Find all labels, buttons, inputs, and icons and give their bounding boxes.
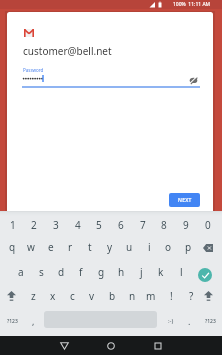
button[interactable]	[203, 244, 214, 252]
staticText: Password	[23, 67, 44, 73]
button[interactable]	[204, 291, 213, 301]
button[interactable]: l	[171, 263, 191, 281]
button[interactable]: 6	[111, 216, 131, 234]
staticText: j	[140, 265, 143, 279]
button[interactable]: b	[102, 287, 122, 305]
button[interactable]: c	[62, 287, 82, 305]
staticText: g	[98, 265, 105, 279]
staticText: p	[185, 240, 192, 254]
staticText: q	[9, 240, 16, 254]
button[interactable]: x	[43, 287, 63, 305]
button[interactable]: 8	[154, 216, 174, 234]
button[interactable]: 0	[198, 216, 218, 234]
button[interactable]: 4	[68, 216, 88, 234]
button[interactable]: 3	[46, 216, 66, 234]
button[interactable]: ?123	[2, 312, 22, 330]
button[interactable]: 9	[176, 216, 196, 234]
button[interactable]	[189, 76, 198, 85]
button[interactable]	[154, 342, 162, 350]
button[interactable]	[107, 342, 115, 350]
button[interactable]: k	[151, 263, 171, 281]
button[interactable]: q	[2, 238, 22, 256]
button[interactable]: ,	[23, 312, 43, 330]
button[interactable]: w	[21, 238, 41, 256]
staticText: ?	[189, 289, 194, 303]
button[interactable]	[198, 268, 212, 282]
button[interactable]: o	[158, 238, 178, 256]
staticText: .	[188, 315, 191, 327]
button[interactable]: 2	[24, 216, 44, 234]
staticText: l	[180, 265, 183, 279]
staticText: 7	[140, 218, 146, 232]
button[interactable]	[7, 291, 16, 301]
staticText: !	[170, 289, 173, 303]
button[interactable]: m	[141, 287, 161, 305]
staticText: 2	[31, 218, 37, 232]
staticText: y	[107, 240, 113, 254]
button[interactable]: n	[122, 287, 142, 305]
staticText: x	[50, 289, 56, 303]
button[interactable]: Password	[22, 64, 207, 87]
staticText: m	[146, 289, 156, 303]
staticText: o	[165, 240, 172, 254]
button[interactable]: v	[82, 287, 102, 305]
button[interactable]: g	[91, 263, 111, 281]
staticText: w	[27, 240, 35, 254]
button[interactable]: ?	[181, 287, 201, 305]
staticText: e	[48, 240, 54, 254]
staticText: c	[70, 289, 75, 303]
button[interactable]: ?123	[200, 312, 220, 330]
staticText: d	[58, 265, 65, 279]
button[interactable]: u	[119, 238, 139, 256]
staticText: v	[89, 289, 95, 303]
button[interactable]: :-)	[161, 312, 181, 330]
button[interactable]: e	[41, 238, 61, 256]
button[interactable]: z	[23, 287, 43, 305]
button[interactable]: j	[131, 263, 151, 281]
staticText: 1	[10, 218, 16, 232]
staticText: a	[18, 265, 24, 279]
staticText: ?123	[205, 318, 216, 325]
button[interactable]: r	[60, 238, 80, 256]
button[interactable]: a	[11, 263, 31, 281]
staticText: 100% 11:11 AM	[173, 1, 211, 8]
staticText: n	[129, 289, 136, 303]
staticText: ?123	[7, 318, 18, 325]
staticText: i	[148, 240, 151, 254]
button[interactable]: f	[71, 263, 91, 281]
button[interactable]: d	[51, 263, 71, 281]
staticText: h	[118, 265, 125, 279]
staticText: s	[39, 265, 44, 279]
button[interactable]: t	[80, 238, 100, 256]
staticText: 6	[118, 218, 124, 232]
button[interactable]: i	[139, 238, 159, 256]
button[interactable]: h	[111, 263, 131, 281]
staticText: 3	[53, 218, 59, 232]
button[interactable]: !	[161, 287, 181, 305]
staticText: 4	[75, 218, 81, 232]
staticText: 5	[96, 218, 102, 232]
button[interactable]: .	[179, 312, 199, 330]
button[interactable]: 7	[133, 216, 153, 234]
button[interactable]: s	[31, 263, 51, 281]
staticText: k	[158, 265, 164, 279]
staticText: f	[79, 265, 83, 279]
staticText: customer@bell.net	[23, 44, 112, 58]
staticText: z	[31, 289, 36, 303]
button[interactable]: p	[178, 238, 198, 256]
button[interactable]: 1	[3, 216, 23, 234]
staticText: :-)	[168, 317, 174, 325]
staticText: b	[109, 289, 116, 303]
staticText: r	[68, 240, 73, 254]
staticText: 8	[161, 218, 167, 232]
button[interactable]: y	[100, 238, 120, 256]
staticText: u	[126, 240, 133, 254]
staticText: t	[88, 240, 92, 254]
staticText: ,	[32, 315, 35, 327]
button[interactable]: 5	[89, 216, 109, 234]
button[interactable]	[60, 342, 69, 350]
staticText: 9	[183, 218, 189, 232]
button[interactable]: NEXT	[169, 193, 200, 207]
staticText: NEXT	[178, 197, 192, 204]
